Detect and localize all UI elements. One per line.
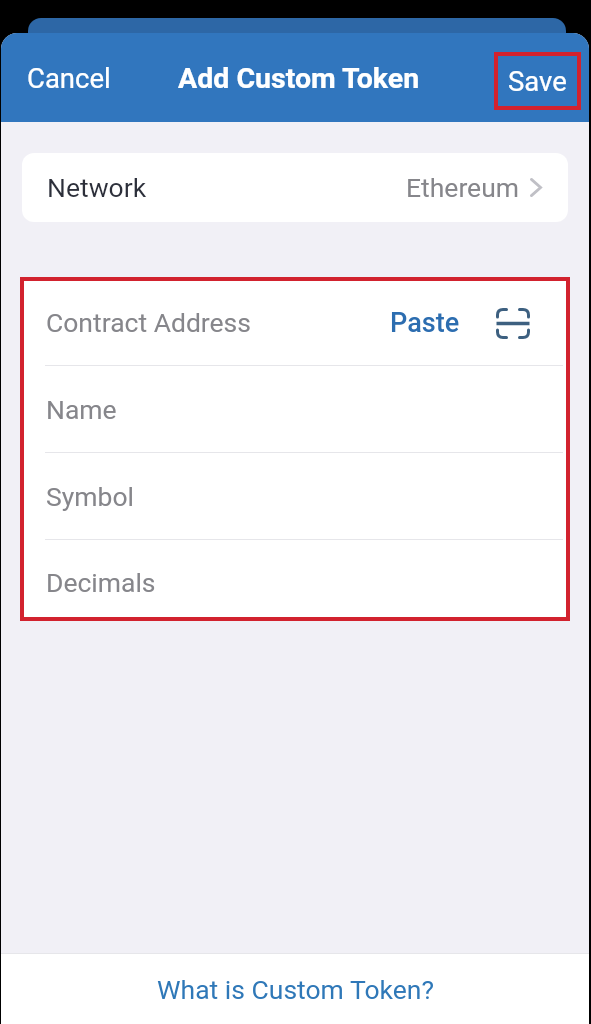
button[interactable]: Save: [494, 52, 581, 110]
staticText: Symbol: [46, 481, 134, 512]
button[interactable]: Decimals: [24, 540, 566, 617]
button[interactable]: Paste: [385, 301, 465, 345]
staticText: Cancel: [27, 62, 111, 94]
staticText: Add Custom Token: [178, 62, 420, 95]
staticText: Ethereum: [406, 172, 520, 203]
button[interactable]: Symbol: [24, 453, 566, 539]
button[interactable]: Contract Address: [24, 281, 566, 365]
button[interactable]: What is Custom Token?: [1, 954, 589, 1024]
staticText: Name: [46, 394, 117, 425]
button[interactable]: Scan QR code: [491, 301, 535, 345]
button[interactable]: Cancel: [14, 50, 128, 106]
staticText: What is Custom Token?: [157, 974, 434, 1005]
staticText: Network: [47, 172, 147, 203]
button[interactable]: Name: [24, 366, 566, 452]
staticText: Paste: [390, 307, 460, 339]
staticText: Save: [508, 65, 567, 97]
staticText: Contract Address: [46, 307, 251, 338]
button[interactable]: Network: [22, 153, 568, 222]
staticText: Decimals: [46, 567, 156, 598]
